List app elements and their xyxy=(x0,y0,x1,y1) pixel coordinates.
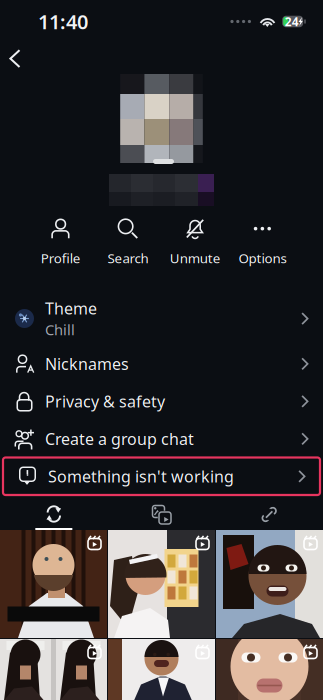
button[interactable]: Create a group chat xyxy=(0,420,323,457)
staticText: Profile xyxy=(41,249,81,267)
staticText: Search xyxy=(107,249,148,267)
button[interactable]: Nicknames xyxy=(0,345,323,382)
button[interactable]: Profile xyxy=(27,222,94,264)
button[interactable]: Options xyxy=(229,222,296,264)
staticText: Theme xyxy=(45,298,97,319)
staticText: Nicknames xyxy=(45,353,129,374)
button[interactable]: Back xyxy=(0,40,44,77)
button[interactable]: Links xyxy=(215,499,323,530)
staticText: Privacy & safety xyxy=(45,391,165,412)
button[interactable]: Unmute xyxy=(161,222,229,264)
button[interactable]: Something isn't working xyxy=(3,457,320,495)
staticText: Something isn't working xyxy=(48,466,234,487)
button[interactable]: Privacy & safety xyxy=(0,382,323,420)
staticText: Unmute xyxy=(170,249,221,267)
button[interactable]: Media xyxy=(108,499,215,530)
staticText: Options xyxy=(238,249,286,267)
button[interactable]: Reels xyxy=(0,499,108,530)
button[interactable]: Reel xyxy=(108,530,215,638)
staticText: Create a group chat xyxy=(45,428,194,449)
button[interactable]: Reel xyxy=(0,530,107,638)
button[interactable]: Search xyxy=(94,222,161,264)
button[interactable]: Reel xyxy=(108,639,215,700)
staticText: 24 xyxy=(285,13,298,29)
button[interactable]: Theme xyxy=(0,292,323,345)
staticText: Chill xyxy=(45,320,75,339)
button[interactable]: Reel xyxy=(216,530,323,638)
staticText: 11:40 xyxy=(38,8,88,35)
button[interactable]: Reel xyxy=(0,639,107,700)
button[interactable]: Reel xyxy=(216,639,323,700)
